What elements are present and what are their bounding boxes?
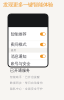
button[interactable]: 夜间模式 <box>8 41 48 48</box>
staticText: 智能推荐 <box>11 32 27 36</box>
staticText: 消息通知 <box>11 54 27 59</box>
button[interactable]: 消息通知 <box>8 53 48 60</box>
staticText: 发现更多一键智能体验 <box>3 1 53 8</box>
button[interactable]: 账号与安全 <box>8 60 48 67</box>
staticText: 数据同步 · 每日自动备份 <box>10 81 43 85</box>
staticText: 隐私中心 · 全面安全守护 <box>10 87 43 90</box>
staticText: 智能助手 · 已开启提醒 <box>10 75 40 79</box>
staticText: 账号与安全 <box>11 61 31 66</box>
button[interactable]: 智能推荐 <box>8 27 48 41</box>
staticText: 已开通服务 <box>10 68 30 73</box>
staticText: 夜间模式 <box>11 42 27 47</box>
staticText: 通用 <box>11 49 17 52</box>
